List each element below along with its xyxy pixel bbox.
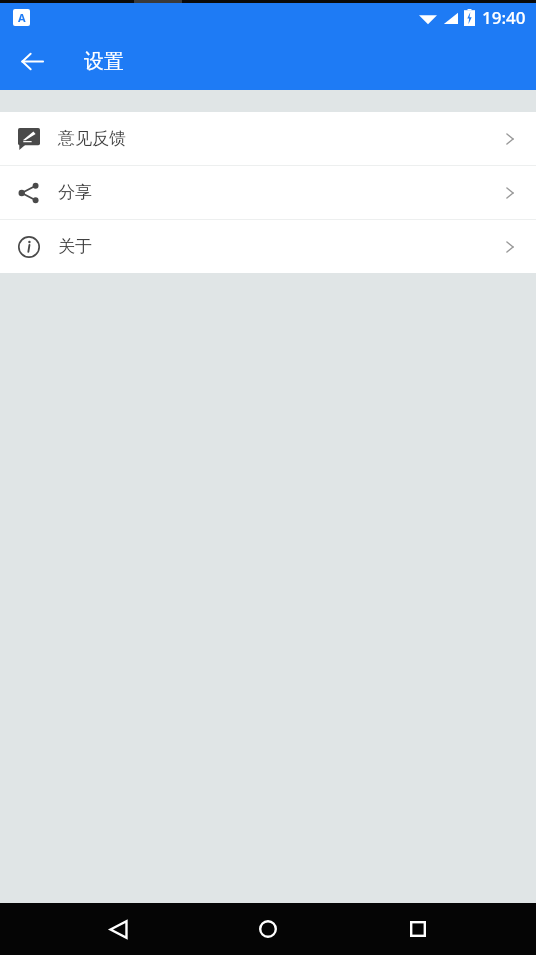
button[interactable]: Home [236, 903, 300, 955]
staticText: 关于 [58, 236, 92, 257]
button[interactable]: 意见反馈 [0, 112, 536, 165]
staticText: 分享 [58, 182, 92, 203]
button[interactable]: 关于 [0, 220, 536, 273]
button[interactable]: Back [86, 903, 150, 955]
staticText: 设置 [84, 49, 124, 74]
button[interactable]: Recent apps [386, 903, 450, 955]
staticText: A [18, 10, 26, 25]
staticText: 意见反馈 [58, 128, 126, 149]
button[interactable]: Back [8, 37, 56, 85]
button[interactable]: 分享 [0, 166, 536, 219]
staticText: 19:40 [482, 6, 526, 29]
